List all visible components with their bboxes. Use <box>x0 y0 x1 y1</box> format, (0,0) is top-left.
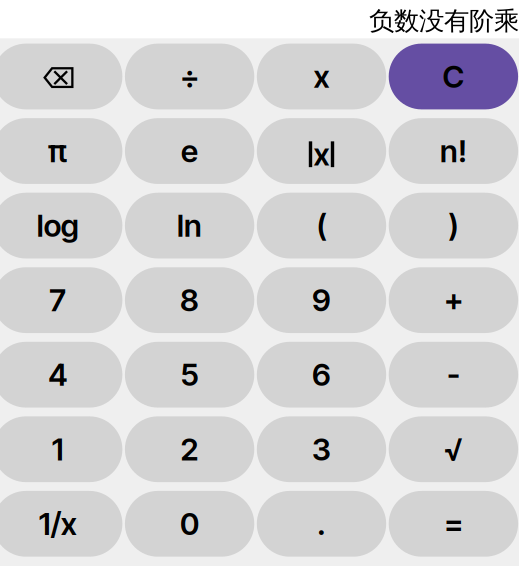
button[interactable]: 7 <box>0 267 122 333</box>
staticText: x <box>313 58 329 95</box>
button[interactable]: - <box>389 342 518 408</box>
button[interactable]: 9 <box>257 267 386 333</box>
staticText: = <box>444 505 463 542</box>
button[interactable]: 1/x <box>0 491 122 557</box>
staticText: 3 <box>312 431 331 468</box>
button[interactable]: 8 <box>125 267 254 333</box>
button[interactable]: n! <box>389 118 518 184</box>
staticText: 6 <box>312 356 331 393</box>
staticText: ÷ <box>180 58 199 95</box>
staticText: . <box>317 505 326 542</box>
staticText: 1/x <box>39 505 77 542</box>
button[interactable]: ln <box>125 193 254 258</box>
staticText: 1 <box>52 431 64 468</box>
staticText: 5 <box>181 356 199 393</box>
button[interactable]: 3 <box>257 416 386 482</box>
button[interactable]: ( <box>257 193 386 258</box>
button[interactable]: 4 <box>0 342 122 408</box>
button[interactable]: √ <box>389 416 518 482</box>
button[interactable]: Delete <box>0 44 122 109</box>
staticText: x <box>313 136 329 173</box>
staticText: ( <box>316 207 326 244</box>
button[interactable]: C <box>389 44 518 109</box>
button[interactable]: π <box>0 118 122 184</box>
staticText: 4 <box>48 356 67 393</box>
staticText: 9 <box>312 282 331 319</box>
staticText: - <box>447 356 460 393</box>
staticText: 2 <box>181 431 199 468</box>
button[interactable]: e <box>125 118 254 184</box>
staticText: 7 <box>49 282 66 319</box>
staticText: e <box>181 132 198 170</box>
button[interactable]: ÷ <box>125 44 254 109</box>
staticText: + <box>444 282 463 319</box>
button[interactable]: 6 <box>257 342 386 408</box>
staticText: 8 <box>180 282 199 319</box>
staticText: 0 <box>180 505 199 542</box>
staticText: 负数没有阶乘 <box>369 5 519 37</box>
button[interactable]: 0 <box>125 491 254 557</box>
button[interactable]: x <box>257 44 386 109</box>
button[interactable]: ) <box>389 193 518 258</box>
button[interactable]: 2 <box>125 416 254 482</box>
staticText: ) <box>448 207 458 244</box>
staticText: ln <box>177 207 202 244</box>
staticText: √ <box>444 431 463 468</box>
button[interactable]: = <box>389 491 518 557</box>
button[interactable]: x <box>257 118 386 184</box>
staticText: C <box>442 58 464 95</box>
staticText: log <box>37 207 79 244</box>
button[interactable]: + <box>389 267 518 333</box>
staticText: π <box>48 132 68 170</box>
button[interactable]: . <box>257 491 386 557</box>
button[interactable]: log <box>0 193 122 258</box>
button[interactable]: 5 <box>125 342 254 408</box>
button[interactable]: 1 <box>0 416 122 482</box>
staticText: n! <box>440 132 467 170</box>
